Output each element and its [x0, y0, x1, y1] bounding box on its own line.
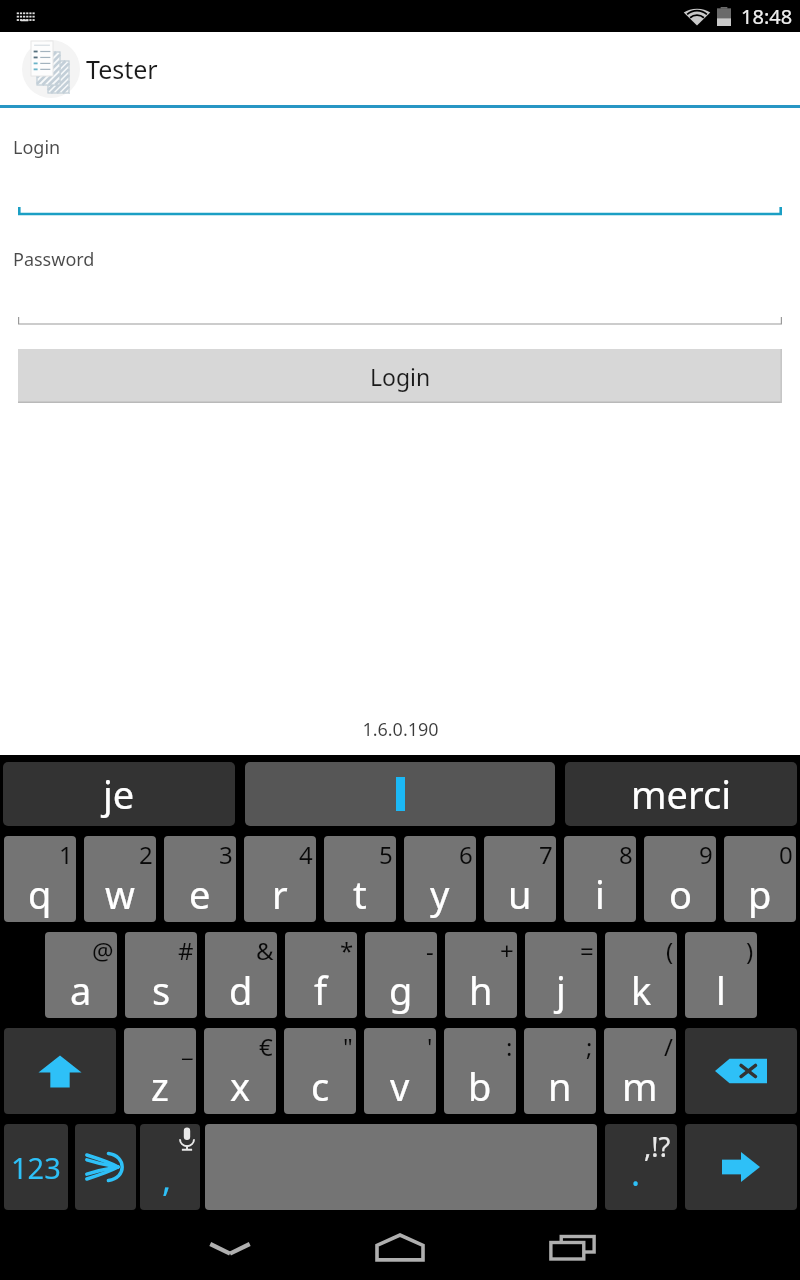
staticText: c: [311, 1060, 330, 1112]
staticText: h: [469, 964, 493, 1016]
staticText: *: [340, 934, 354, 967]
staticText: g: [389, 964, 413, 1016]
staticText: 1: [59, 838, 73, 871]
staticText: ,: [162, 1156, 172, 1202]
staticText: ,!?: [644, 1128, 671, 1165]
button[interactable]: Login: [0, 125, 800, 220]
staticText: v: [390, 1060, 410, 1112]
button[interactable]: :: [444, 1028, 516, 1114]
staticText: /: [664, 1030, 673, 1063]
staticText: :: [506, 1030, 513, 1063]
button[interactable]: Comma and voice input: [140, 1124, 200, 1210]
button[interactable]: Keyboard settings: [75, 1124, 136, 1210]
button[interactable]: Recent apps: [512, 1215, 632, 1280]
staticText: _: [182, 1030, 193, 1063]
button[interactable]: Tester: [0, 32, 178, 105]
staticText: 0: [779, 838, 793, 871]
staticText: Login: [370, 361, 431, 392]
button[interactable]: Numbers: [4, 1124, 68, 1210]
staticText: i: [595, 868, 605, 920]
button[interactable]: @: [45, 932, 117, 1018]
staticText: 1.6.0.190: [362, 717, 439, 742]
button[interactable]: ): [685, 932, 757, 1018]
button[interactable]: Shift: [4, 1028, 116, 1114]
staticText: 5: [379, 838, 393, 871]
staticText: =: [580, 934, 594, 967]
button[interactable]: Enter: [685, 1124, 797, 1210]
staticText: n: [548, 1060, 572, 1112]
button[interactable]: Backspace: [685, 1028, 797, 1114]
staticText: ;: [586, 1030, 593, 1063]
button[interactable]: Password: [0, 237, 800, 332]
button[interactable]: 3: [164, 836, 236, 922]
staticText: 7: [539, 838, 553, 871]
staticText: ': [427, 1030, 433, 1063]
staticText: t: [353, 868, 367, 920]
staticText: z: [151, 1060, 169, 1112]
button[interactable]: =: [525, 932, 597, 1018]
staticText: merci: [631, 768, 731, 820]
staticText: 4: [299, 838, 313, 871]
button[interactable]: Login: [18, 349, 782, 403]
staticText: l: [716, 964, 726, 1016]
staticText: 3: [219, 838, 233, 871]
button[interactable]: *: [285, 932, 357, 1018]
staticText: Password: [13, 247, 95, 272]
staticText: d: [229, 964, 253, 1016]
button[interactable]: Punctuation: [605, 1124, 677, 1210]
staticText: p: [748, 868, 772, 920]
staticText: -: [426, 934, 434, 967]
button[interactable]: _: [124, 1028, 196, 1114]
button[interactable]: ': [364, 1028, 436, 1114]
staticText: q: [28, 868, 52, 920]
button[interactable]: 5: [324, 836, 396, 922]
staticText: 6: [459, 838, 473, 871]
staticText: je: [103, 768, 135, 820]
staticText: ": [343, 1030, 353, 1063]
button[interactable]: 7: [484, 836, 556, 922]
staticText: w: [105, 868, 135, 920]
staticText: b: [468, 1060, 492, 1112]
button[interactable]: &: [205, 932, 277, 1018]
staticText: &: [256, 934, 274, 967]
staticText: m: [622, 1060, 658, 1112]
staticText: o: [669, 868, 692, 920]
staticText: Tester: [86, 52, 158, 86]
staticText: @: [92, 934, 114, 967]
staticText: 9: [699, 838, 713, 871]
button[interactable]: 0: [724, 836, 796, 922]
button[interactable]: ;: [524, 1028, 596, 1114]
staticText: r: [272, 868, 288, 920]
button[interactable]: merci: [565, 762, 797, 826]
button[interactable]: (: [605, 932, 677, 1018]
staticText: 18:48: [741, 3, 793, 30]
staticText: y: [430, 868, 450, 920]
button[interactable]: Home: [340, 1215, 460, 1280]
button[interactable]: je: [3, 762, 235, 826]
staticText: a: [70, 964, 92, 1016]
button[interactable]: 2: [84, 836, 156, 922]
staticText: Login: [13, 135, 61, 160]
button[interactable]: /: [604, 1028, 676, 1114]
button[interactable]: 8: [564, 836, 636, 922]
staticText: #: [178, 934, 194, 967]
button[interactable]: Hide keyboard: [170, 1215, 290, 1280]
button[interactable]: €: [204, 1028, 276, 1114]
button[interactable]: 6: [404, 836, 476, 922]
button[interactable]: -: [365, 932, 437, 1018]
button[interactable]: ": [284, 1028, 356, 1114]
staticText: u: [508, 868, 532, 920]
button[interactable]: 1: [4, 836, 76, 922]
button[interactable]: +: [445, 932, 517, 1018]
button[interactable]: 4: [244, 836, 316, 922]
staticText: 123: [11, 1148, 61, 1187]
staticText: k: [631, 964, 652, 1016]
staticText: 2: [139, 838, 153, 871]
staticText: e: [189, 868, 211, 920]
staticText: x: [230, 1060, 251, 1112]
staticText: j: [556, 964, 566, 1016]
button[interactable]: #: [125, 932, 197, 1018]
button[interactable]: 9: [644, 836, 716, 922]
button[interactable]: l: [245, 762, 555, 826]
